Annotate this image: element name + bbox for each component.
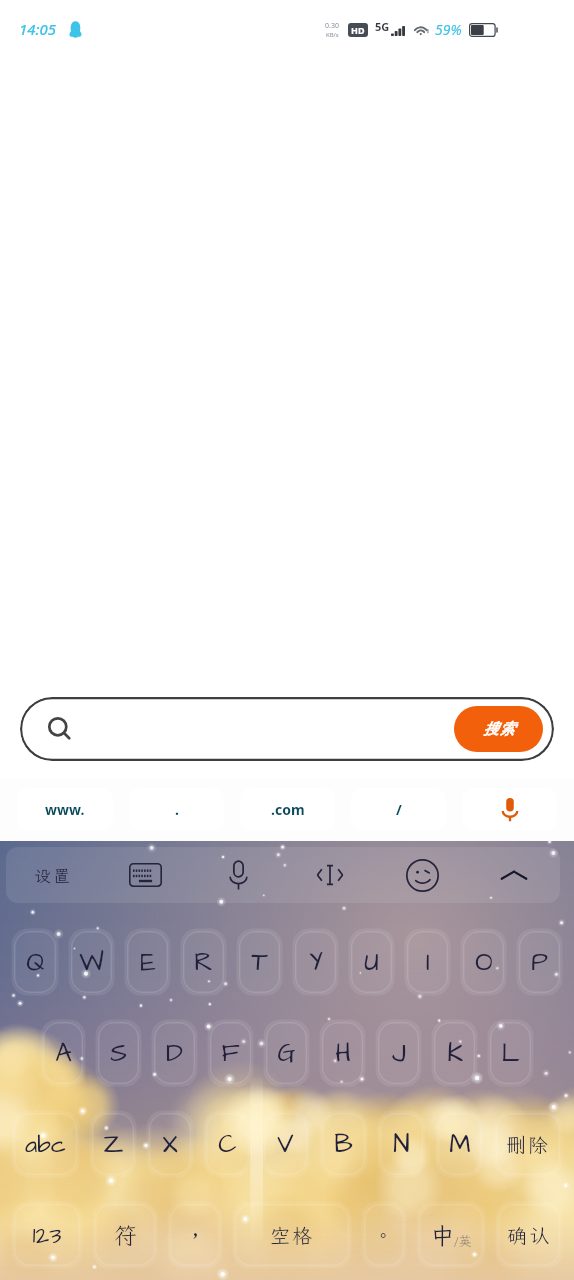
staticText: O (475, 944, 493, 980)
button[interactable]: Voice input (192, 847, 284, 903)
staticText: 设置 (34, 864, 72, 886)
button[interactable]: W (71, 931, 112, 993)
button[interactable]: V (264, 1113, 307, 1175)
button[interactable]: Z (92, 1113, 134, 1175)
button[interactable]: 搜索 (454, 706, 543, 752)
button[interactable]: F (210, 1022, 251, 1084)
staticText: 14:05 (19, 19, 57, 39)
button[interactable]: . (129, 788, 224, 831)
button[interactable]: A (43, 1022, 83, 1084)
button[interactable]: O (463, 931, 504, 993)
staticText: Z (103, 1126, 124, 1162)
button[interactable]: B (322, 1113, 365, 1175)
staticText: 59% (435, 20, 462, 39)
staticText: 123 (32, 1219, 62, 1252)
staticText: C (218, 1126, 237, 1162)
staticText: ， (183, 1220, 208, 1250)
staticText: A (55, 1035, 72, 1071)
staticText: J (392, 1035, 406, 1071)
staticText: U (364, 944, 379, 980)
button[interactable]: M (438, 1113, 481, 1175)
button[interactable]: 确认 (498, 1204, 560, 1266)
button[interactable]: 123 (14, 1204, 80, 1266)
button[interactable]: I (407, 931, 448, 993)
staticText: 0.30 (325, 21, 339, 31)
staticText: F (221, 1035, 240, 1071)
button[interactable]: 。 (364, 1204, 404, 1266)
staticText: M (449, 1126, 471, 1162)
button[interactable]: 空格 (235, 1204, 349, 1266)
staticText: 删除 (506, 1131, 550, 1157)
button[interactable]: N (380, 1113, 423, 1175)
staticText: 搜索 (483, 720, 515, 739)
button[interactable]: Y (295, 931, 336, 993)
staticText: G (277, 1035, 296, 1071)
staticText: Q (26, 944, 45, 980)
button[interactable]: X (149, 1113, 191, 1175)
staticText: E (140, 944, 156, 980)
button[interactable]: Hide keyboard (468, 847, 560, 903)
staticText: abc (25, 1128, 66, 1161)
button[interactable]: Q (14, 931, 56, 993)
button[interactable]: U (351, 931, 392, 993)
staticText: /英 (454, 1233, 472, 1250)
button[interactable]: S (98, 1022, 139, 1084)
button[interactable]: 搜索 (20, 697, 554, 761)
button[interactable]: J (378, 1022, 419, 1084)
staticText: B (334, 1126, 353, 1162)
staticText: K (447, 1035, 463, 1071)
staticText: 中 (431, 1220, 454, 1250)
staticText: L (501, 1035, 520, 1071)
staticText: P (531, 944, 548, 980)
button[interactable]: K (434, 1022, 475, 1084)
staticText: 。 (374, 1223, 394, 1247)
button[interactable]: Move cursor (284, 847, 376, 903)
button[interactable]: Voice input (462, 788, 557, 831)
staticText: N (393, 1126, 410, 1162)
staticText: .com (271, 800, 305, 819)
button[interactable]: abc (14, 1113, 77, 1175)
button[interactable]: T (239, 931, 280, 993)
staticText: X (162, 1126, 178, 1162)
staticText: R (194, 944, 213, 980)
staticText: D (166, 1035, 183, 1071)
staticText: W (79, 944, 104, 980)
button[interactable]: 删除 (496, 1113, 560, 1175)
staticText: 符 (113, 1220, 138, 1250)
button[interactable]: H (322, 1022, 363, 1084)
staticText: 空格 (270, 1222, 314, 1248)
staticText: www. (45, 800, 85, 819)
button[interactable]: Keyboard layout (99, 847, 192, 903)
button[interactable]: E (127, 931, 168, 993)
button[interactable]: / (351, 788, 446, 831)
staticText: S (110, 1035, 127, 1071)
button[interactable]: www. (17, 788, 113, 831)
staticText: 5G (375, 19, 390, 34)
button[interactable]: Emoji (376, 847, 468, 903)
button[interactable]: 中 (419, 1204, 483, 1266)
button[interactable]: G (266, 1022, 307, 1084)
staticText: KB/s (326, 31, 339, 39)
staticText: . (175, 800, 179, 819)
staticText: Y (309, 944, 323, 980)
staticText: H (335, 1035, 351, 1071)
button[interactable]: P (519, 931, 560, 993)
button[interactable]: ， (170, 1204, 220, 1266)
button[interactable]: 符 (95, 1204, 155, 1266)
staticText: HD (351, 24, 365, 36)
staticText: 确认 (507, 1222, 551, 1248)
button[interactable]: 设置 (6, 847, 99, 903)
button[interactable]: .com (240, 788, 335, 831)
button[interactable]: R (183, 931, 224, 993)
button[interactable]: C (206, 1113, 249, 1175)
staticText: T (251, 944, 268, 980)
button[interactable]: D (154, 1022, 195, 1084)
staticText: V (277, 1126, 294, 1162)
staticText: / (396, 800, 402, 819)
button[interactable]: L (490, 1022, 531, 1084)
staticText: I (426, 944, 430, 980)
